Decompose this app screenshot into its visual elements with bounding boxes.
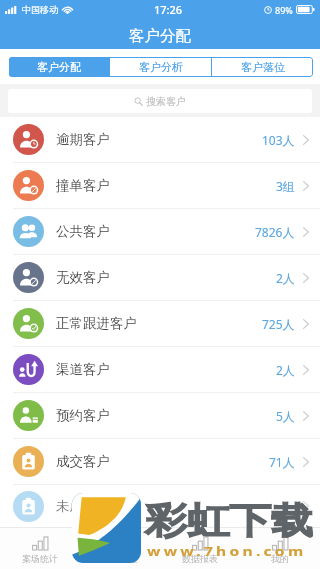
staticText: 搜索客户 <box>146 95 186 108</box>
button[interactable]: 案场统计 <box>0 536 80 569</box>
staticText: 71人 <box>269 454 295 470</box>
staticText: 未成交客户 <box>56 498 124 515</box>
staticText: 103人 <box>262 132 295 148</box>
staticText: 5人 <box>276 408 295 424</box>
staticText: 渠道客户 <box>56 361 110 378</box>
staticText: www.7hon.com <box>147 543 307 560</box>
button[interactable]: 预约客户 <box>0 393 320 439</box>
staticText: 撞单客户 <box>56 177 110 194</box>
staticText: 客户管理 <box>102 553 138 564</box>
button[interactable]: 撞单客户 <box>0 163 320 209</box>
staticText: 正常跟进客户 <box>56 315 137 332</box>
staticText: 2人 <box>276 362 295 378</box>
button[interactable]: 我的 <box>240 536 320 569</box>
button[interactable]: 数据报表 <box>160 536 240 569</box>
button[interactable]: 渠道客户 <box>0 347 320 393</box>
staticText: 客户分配 <box>129 26 191 46</box>
staticText: 7826人 <box>255 224 295 240</box>
staticText: 数据报表 <box>182 553 218 564</box>
staticText: 预约客户 <box>56 407 110 424</box>
staticText: 成交客户 <box>56 453 110 470</box>
staticText: 无效客户 <box>56 269 110 286</box>
staticText: 客户分析 <box>139 60 183 74</box>
staticText: 725人 <box>262 316 295 332</box>
staticText: 我的 <box>271 553 289 564</box>
staticText: 17:26 <box>154 2 183 17</box>
button[interactable]: 客户落位 <box>212 57 313 77</box>
button[interactable]: 公共客户 <box>0 209 320 255</box>
staticText: 客户落位 <box>241 60 285 74</box>
staticText: 公共客户 <box>56 223 110 240</box>
button[interactable]: 成交客户 <box>0 439 320 485</box>
staticText: 案场统计 <box>22 553 58 564</box>
button[interactable]: 客户分析 <box>110 57 211 77</box>
button[interactable]: 逾期客户 <box>0 117 320 163</box>
button[interactable]: 搜索客户 <box>8 89 312 113</box>
staticText: 3组 <box>276 178 295 194</box>
button[interactable]: 未成交客户 <box>0 485 320 527</box>
staticText: 彩虹下载 <box>145 498 313 543</box>
staticText: 89% <box>275 4 293 16</box>
staticText: 中国移动 <box>22 4 58 15</box>
button[interactable]: 客户管理 <box>80 536 160 569</box>
button[interactable]: 正常跟进客户 <box>0 301 320 347</box>
staticText: 客户分配 <box>37 60 81 74</box>
staticText: 2人 <box>276 270 295 286</box>
staticText: 逾期客户 <box>56 131 110 148</box>
button[interactable]: 无效客户 <box>0 255 320 301</box>
button[interactable]: 客户分配 <box>9 57 109 77</box>
